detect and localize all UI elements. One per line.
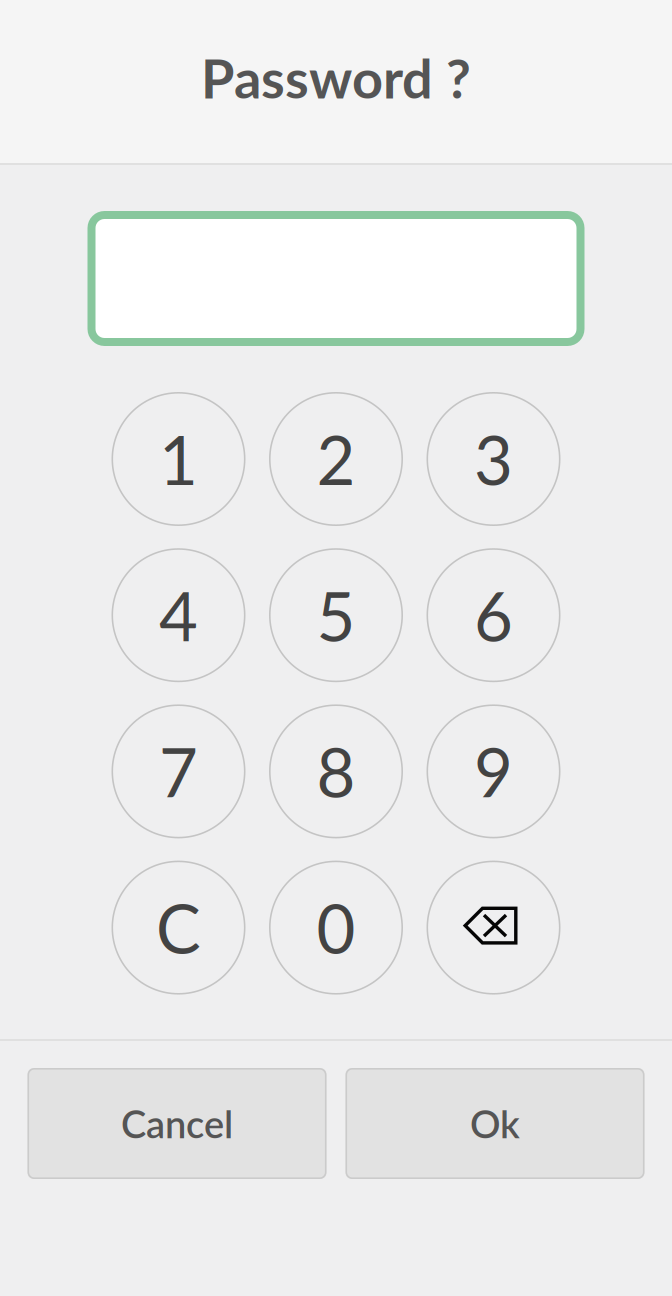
button[interactable]: 2 bbox=[269, 392, 403, 526]
staticText: 4 bbox=[159, 575, 198, 655]
staticText: Cancel bbox=[121, 1101, 233, 1146]
staticText: 5 bbox=[316, 575, 355, 655]
staticText: C bbox=[156, 887, 201, 968]
staticText: 9 bbox=[474, 731, 513, 812]
button[interactable]: 4 bbox=[111, 548, 245, 682]
button[interactable]: 0 bbox=[269, 861, 403, 995]
button[interactable]: 5 bbox=[269, 548, 403, 682]
staticText: Password ? bbox=[201, 45, 471, 110]
button[interactable]: 8 bbox=[269, 704, 403, 838]
staticText: 3 bbox=[474, 419, 513, 499]
staticText: 6 bbox=[474, 575, 513, 655]
button[interactable]: 7 bbox=[111, 704, 245, 838]
staticText: 1 bbox=[159, 419, 198, 499]
button[interactable]: Cancel bbox=[27, 1068, 326, 1179]
button[interactable]: Password bbox=[87, 211, 584, 346]
staticText: Ok bbox=[470, 1101, 520, 1146]
staticText: 7 bbox=[159, 731, 198, 812]
button[interactable]: Delete bbox=[426, 861, 560, 995]
button[interactable]: Ok bbox=[345, 1068, 644, 1179]
button[interactable]: 6 bbox=[426, 548, 560, 682]
button[interactable]: 3 bbox=[426, 392, 560, 526]
button[interactable]: C bbox=[111, 861, 245, 995]
staticText: 0 bbox=[316, 887, 355, 968]
button[interactable]: 1 bbox=[111, 392, 245, 526]
button[interactable]: 9 bbox=[426, 704, 560, 838]
staticText: 2 bbox=[316, 419, 355, 499]
staticText: 8 bbox=[316, 731, 355, 812]
